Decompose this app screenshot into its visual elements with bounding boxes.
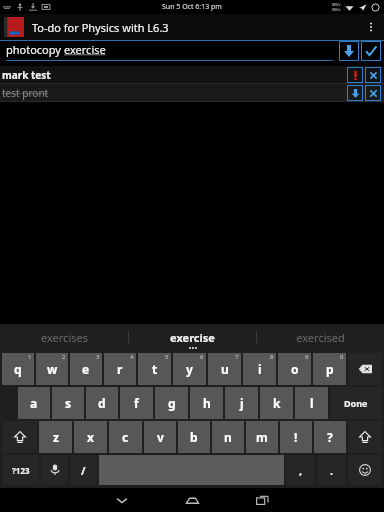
- staticText: f: [134, 395, 139, 411]
- staticText: a: [30, 395, 38, 411]
- staticText: d: [98, 395, 106, 411]
- button[interactable]: t: [138, 353, 171, 385]
- staticText: h: [203, 395, 211, 411]
- button[interactable]: n: [212, 421, 244, 453]
- staticText: x: [87, 429, 94, 445]
- button[interactable]: More options: [358, 14, 384, 40]
- button[interactable]: ?123: [2, 455, 39, 485]
- staticText: l: [310, 395, 314, 411]
- button[interactable]: Delete: [365, 85, 381, 101]
- button[interactable]: l: [295, 387, 328, 419]
- staticText: 2: [62, 353, 66, 361]
- button[interactable]: i: [243, 353, 276, 385]
- staticText: c: [122, 429, 129, 445]
- staticText: 4: [130, 353, 134, 361]
- staticText: b: [190, 429, 198, 445]
- button[interactable]: x: [74, 421, 107, 453]
- staticText: To-do for Physics with L6.3: [32, 20, 169, 35]
- button[interactable]: exercise: [129, 324, 256, 350]
- button[interactable]: a: [18, 387, 50, 419]
- button[interactable]: g: [155, 387, 188, 419]
- staticText: q: [14, 361, 22, 377]
- button[interactable]: Emoji: [348, 455, 382, 485]
- button[interactable]: r: [104, 353, 136, 385]
- staticText: .: [330, 463, 334, 478]
- button[interactable]: ,: [286, 455, 315, 485]
- staticText: !: [294, 429, 298, 445]
- button[interactable]: mark test: [0, 66, 384, 84]
- button[interactable]: Mark urgent: [347, 67, 363, 83]
- staticText: y: [186, 361, 193, 377]
- staticText: n: [224, 429, 232, 445]
- button[interactable]: Backspace: [348, 353, 382, 385]
- staticText: photocopy: [6, 42, 64, 57]
- button[interactable]: /: [70, 455, 97, 485]
- button[interactable]: Hide keyboard: [87, 488, 157, 512]
- staticText: ?: [327, 429, 333, 445]
- staticText: o: [291, 361, 299, 377]
- button[interactable]: Home: [157, 488, 227, 512]
- staticText: 0B/s: [332, 7, 341, 12]
- staticText: i: [258, 361, 262, 377]
- staticText: exercise: [64, 42, 106, 57]
- staticText: exercises: [41, 330, 88, 345]
- button[interactable]: z: [39, 421, 72, 453]
- button[interactable]: o: [278, 353, 311, 385]
- button[interactable]: Voice input: [41, 455, 68, 485]
- staticText: p: [326, 361, 334, 377]
- button[interactable]: k: [260, 387, 293, 419]
- button[interactable]: .: [317, 455, 346, 485]
- staticText: ,: [299, 463, 303, 478]
- button[interactable]: y: [173, 353, 206, 385]
- button[interactable]: Move down: [347, 85, 363, 101]
- staticText: 6: [200, 353, 204, 361]
- button[interactable]: q: [2, 353, 34, 385]
- button[interactable]: test pront: [0, 84, 384, 102]
- button[interactable]: Recent apps: [227, 488, 297, 512]
- button[interactable]: f: [120, 387, 153, 419]
- staticText: ?123: [12, 465, 30, 476]
- button[interactable]: s: [52, 387, 84, 419]
- button[interactable]: Confirm: [361, 41, 381, 61]
- staticText: z: [53, 429, 59, 445]
- staticText: g: [168, 395, 176, 411]
- button[interactable]: w: [36, 353, 68, 385]
- button[interactable]: v: [144, 421, 176, 453]
- button[interactable]: exercises: [0, 324, 128, 350]
- button[interactable]: Shift: [348, 421, 382, 453]
- staticText: t: [152, 361, 158, 377]
- button[interactable]: b: [178, 421, 210, 453]
- button[interactable]: Delete: [365, 67, 381, 83]
- button[interactable]: Shift: [2, 421, 37, 453]
- staticText: mark test: [2, 68, 51, 82]
- button[interactable]: !: [280, 421, 312, 453]
- button[interactable]: j: [225, 387, 258, 419]
- staticText: 0B/s: [332, 2, 341, 7]
- button[interactable]: m: [246, 421, 278, 453]
- button[interactable]: Move down: [339, 41, 359, 61]
- staticText: u: [221, 361, 229, 377]
- staticText: /: [81, 463, 86, 478]
- staticText: exercise: [170, 330, 215, 345]
- button[interactable]: Done: [330, 387, 382, 419]
- staticText: 5: [165, 353, 169, 361]
- staticText: r: [117, 361, 123, 377]
- button[interactable]: e: [70, 353, 102, 385]
- button[interactable]: p: [313, 353, 346, 385]
- staticText: 9: [305, 353, 309, 361]
- button[interactable]: d: [86, 387, 118, 419]
- button[interactable]: exercised: [257, 324, 384, 350]
- button[interactable]: h: [190, 387, 223, 419]
- staticText: Sun 5 Oct 6:13 pm: [162, 2, 222, 12]
- staticText: exercised: [296, 330, 345, 345]
- staticText: Done: [344, 397, 368, 409]
- staticText: e: [82, 361, 90, 377]
- button[interactable]: ?: [314, 421, 346, 453]
- staticText: w: [47, 361, 58, 377]
- button[interactable]: c: [109, 421, 142, 453]
- button[interactable]: u: [208, 353, 241, 385]
- staticText: 0: [340, 353, 344, 361]
- staticText: 1: [28, 353, 32, 361]
- staticText: m: [256, 429, 268, 445]
